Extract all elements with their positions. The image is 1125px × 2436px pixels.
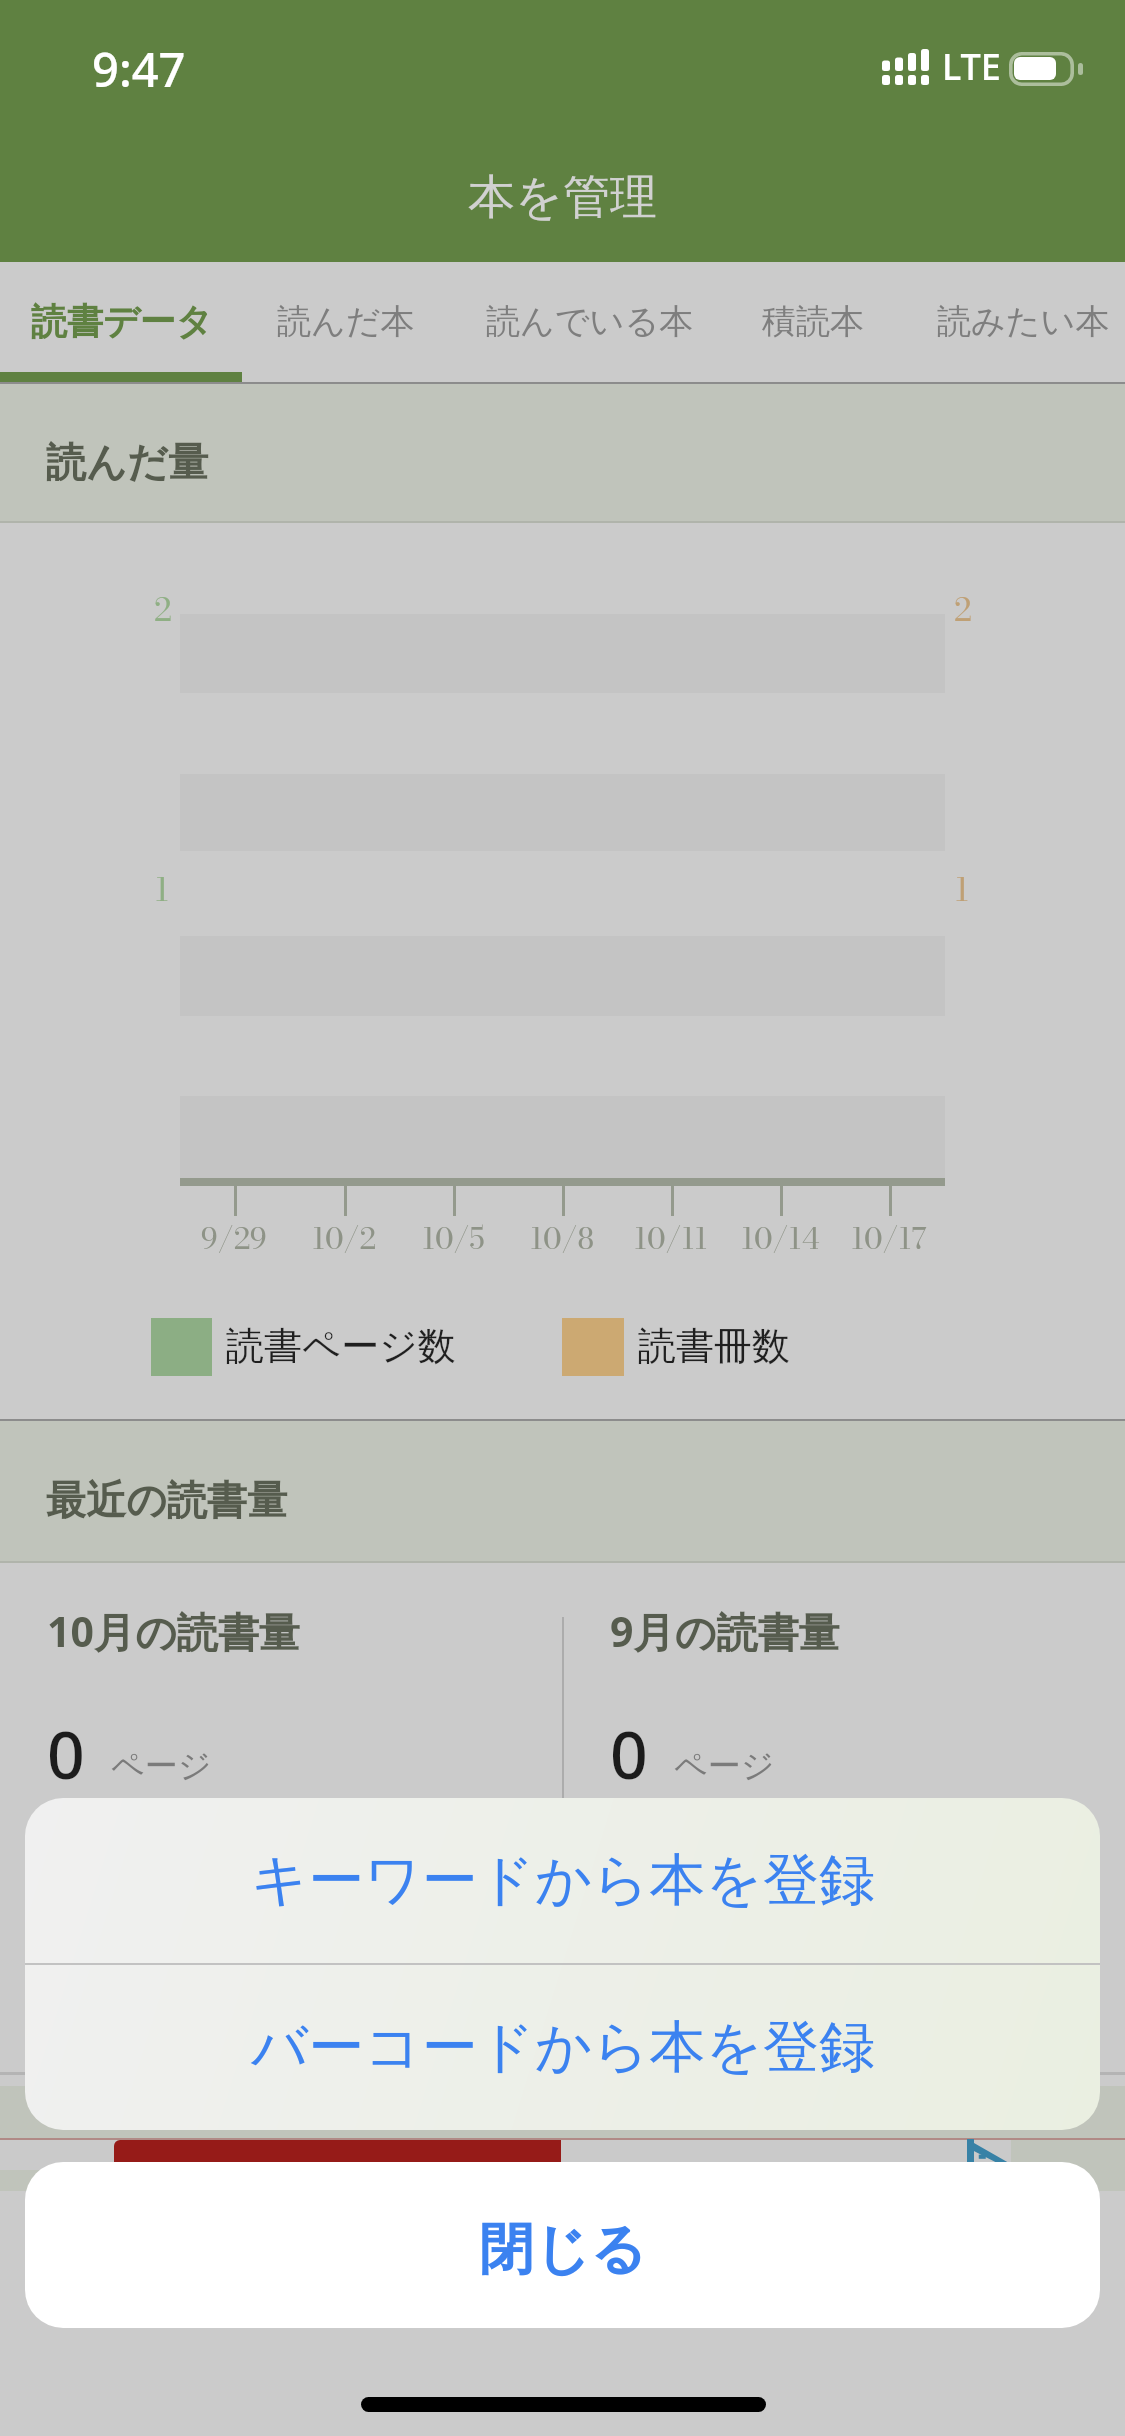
staticText: ページ (674, 1745, 775, 1787)
staticText: キーワードから本を登録 (251, 1845, 875, 1916)
staticText: 最近の読書量 (46, 1475, 287, 1525)
staticText: 10/8 (530, 1215, 594, 1261)
other: Advertisement (967, 2139, 1009, 2169)
staticText: 10月の読書量 (47, 1603, 300, 1659)
staticText: 2 (154, 585, 172, 634)
button[interactable]: バーコードから本を登録 (25, 1965, 1100, 2130)
button[interactable]: 読んでいる本 (449, 262, 731, 380)
staticText: 9月の読書量 (610, 1603, 840, 1659)
staticText: LTE (942, 42, 1001, 88)
staticText: 10/11 (634, 1215, 708, 1261)
other: Battery (1007, 50, 1085, 86)
staticText: 閉じる (479, 2215, 647, 2284)
staticText: 1 (955, 865, 969, 914)
staticText: 1 (155, 865, 169, 914)
button[interactable]: 読みたい本 (910, 262, 1125, 380)
staticText: 0 (47, 1708, 85, 1798)
staticText: ページ (111, 1745, 212, 1787)
staticText: 読書冊数 (638, 1322, 790, 1370)
staticText: 10/2 (312, 1215, 376, 1261)
staticText: 読みたい本 (937, 300, 1110, 343)
staticText: 9/29 (201, 1215, 267, 1261)
staticText: バーコードから本を登録 (251, 2012, 875, 2083)
button[interactable]: キーワードから本を登録 (25, 1798, 1100, 1963)
staticText: 積読本 (762, 300, 864, 343)
staticText: 10/17 (851, 1215, 927, 1261)
button[interactable]: 読書データ (1, 262, 243, 380)
staticText: 読んでいる本 (486, 300, 694, 343)
staticText: 10/14 (741, 1215, 820, 1261)
staticText: 読んだ量 (46, 437, 208, 487)
other: Cellular signal (882, 46, 930, 90)
staticText: 0 (610, 1708, 648, 1798)
staticText: 本を管理 (468, 168, 658, 227)
button[interactable]: 読んだ本 (244, 262, 448, 380)
staticText: 10/5 (422, 1215, 485, 1261)
button[interactable]: 閉じる (25, 2162, 1100, 2328)
staticText: 読書ページ数 (226, 1322, 456, 1370)
staticText: 9:47 (92, 37, 186, 101)
staticText: 2 (954, 585, 972, 634)
staticText: 読んだ本 (277, 300, 415, 343)
button[interactable]: 積読本 (728, 262, 898, 380)
staticText: 読書データ (31, 299, 213, 344)
